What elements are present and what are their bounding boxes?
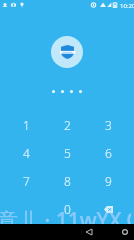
staticText: 2 <box>64 117 71 133</box>
staticText: 3 <box>105 117 112 133</box>
staticText: 4 <box>23 145 30 161</box>
button[interactable]: 4 <box>5 139 47 167</box>
staticText: 0 <box>64 201 71 217</box>
button[interactable]: 2 <box>47 111 88 139</box>
button[interactable]: 9 <box>88 167 129 195</box>
button[interactable]: 0 <box>47 195 88 223</box>
button[interactable]: Back <box>22 224 134 240</box>
button[interactable] <box>5 195 47 223</box>
staticText: 6 <box>105 145 112 161</box>
button[interactable]: Home <box>58 224 134 240</box>
staticText: 9 <box>105 173 112 189</box>
other: Delete <box>104 206 113 213</box>
button[interactable]: Recents <box>93 224 134 240</box>
button[interactable]: 6 <box>88 139 129 167</box>
button[interactable]: 1 <box>5 111 47 139</box>
button[interactable]: 7 <box>5 167 47 195</box>
button[interactable]: 3 <box>88 111 129 139</box>
staticText: 7 <box>23 173 30 189</box>
staticText: 意儿 · 11wYX.CO <box>0 206 131 235</box>
staticText: 5 <box>64 145 71 161</box>
staticText: 1 <box>23 117 30 133</box>
button[interactable]: Delete <box>88 195 129 223</box>
staticText: 8 <box>64 173 71 189</box>
staticText: 10:20 <box>120 2 134 10</box>
button[interactable]: 8 <box>47 167 88 195</box>
button[interactable]: 5 <box>47 139 88 167</box>
